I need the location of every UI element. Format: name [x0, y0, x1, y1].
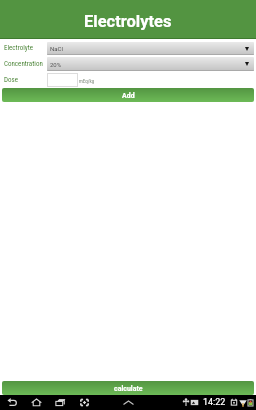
button[interactable]: Add — [2, 88, 254, 102]
staticText: Add — [122, 92, 135, 100]
button[interactable]: Show navigation bar — [120, 395, 136, 410]
staticText: Dose — [4, 76, 18, 84]
staticText: 20% — [50, 61, 62, 68]
staticText: calculate — [114, 385, 143, 393]
button[interactable]: Screenshot — [77, 395, 92, 410]
button[interactable]: Recent apps — [53, 395, 68, 410]
staticText: Concentration — [4, 60, 43, 68]
staticText: mEq/kg — [79, 78, 95, 84]
staticText: 14:22 — [203, 397, 226, 408]
button[interactable]: calculate — [2, 381, 254, 395]
staticText: Electrolytes — [84, 12, 172, 31]
staticText: Electrolyte — [4, 44, 34, 52]
button[interactable]: 20% — [47, 57, 254, 71]
button[interactable]: Back — [5, 395, 20, 410]
staticText: NaCl — [50, 45, 63, 52]
button[interactable]: Home — [29, 395, 44, 410]
button[interactable]: NaCl — [47, 42, 254, 55]
